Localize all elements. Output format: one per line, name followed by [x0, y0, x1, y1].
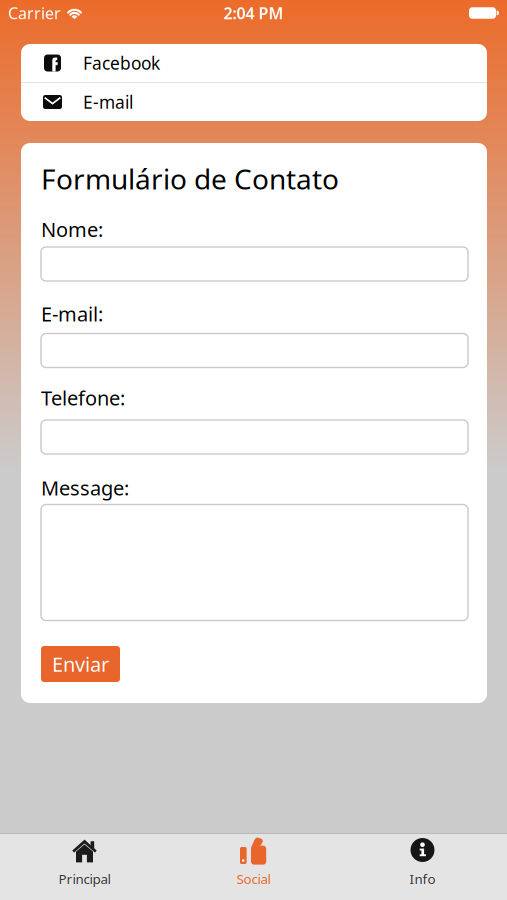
- staticText: Principal: [58, 870, 110, 888]
- staticText: Telefone:: [41, 384, 125, 411]
- staticText: Carrier: [8, 2, 61, 24]
- button[interactable]: Social: [169, 834, 338, 900]
- staticText: 2:04 PM: [223, 2, 283, 24]
- staticText: Social: [236, 870, 270, 888]
- button[interactable]: E-mail: [21, 83, 487, 121]
- button[interactable]: Enviar: [41, 646, 120, 682]
- button[interactable]: Facebook: [21, 44, 487, 82]
- staticText: Message:: [41, 474, 129, 501]
- staticText: Formulário de Contato: [41, 160, 339, 197]
- staticText: Nome:: [41, 216, 103, 243]
- staticText: E-mail:: [41, 300, 103, 327]
- staticText: Info: [409, 870, 435, 888]
- staticText: E-mail: [83, 90, 133, 113]
- button[interactable]: Info: [338, 834, 507, 900]
- button[interactable]: Principal: [0, 834, 169, 900]
- staticText: Facebook: [83, 51, 160, 74]
- staticText: Enviar: [52, 651, 109, 677]
